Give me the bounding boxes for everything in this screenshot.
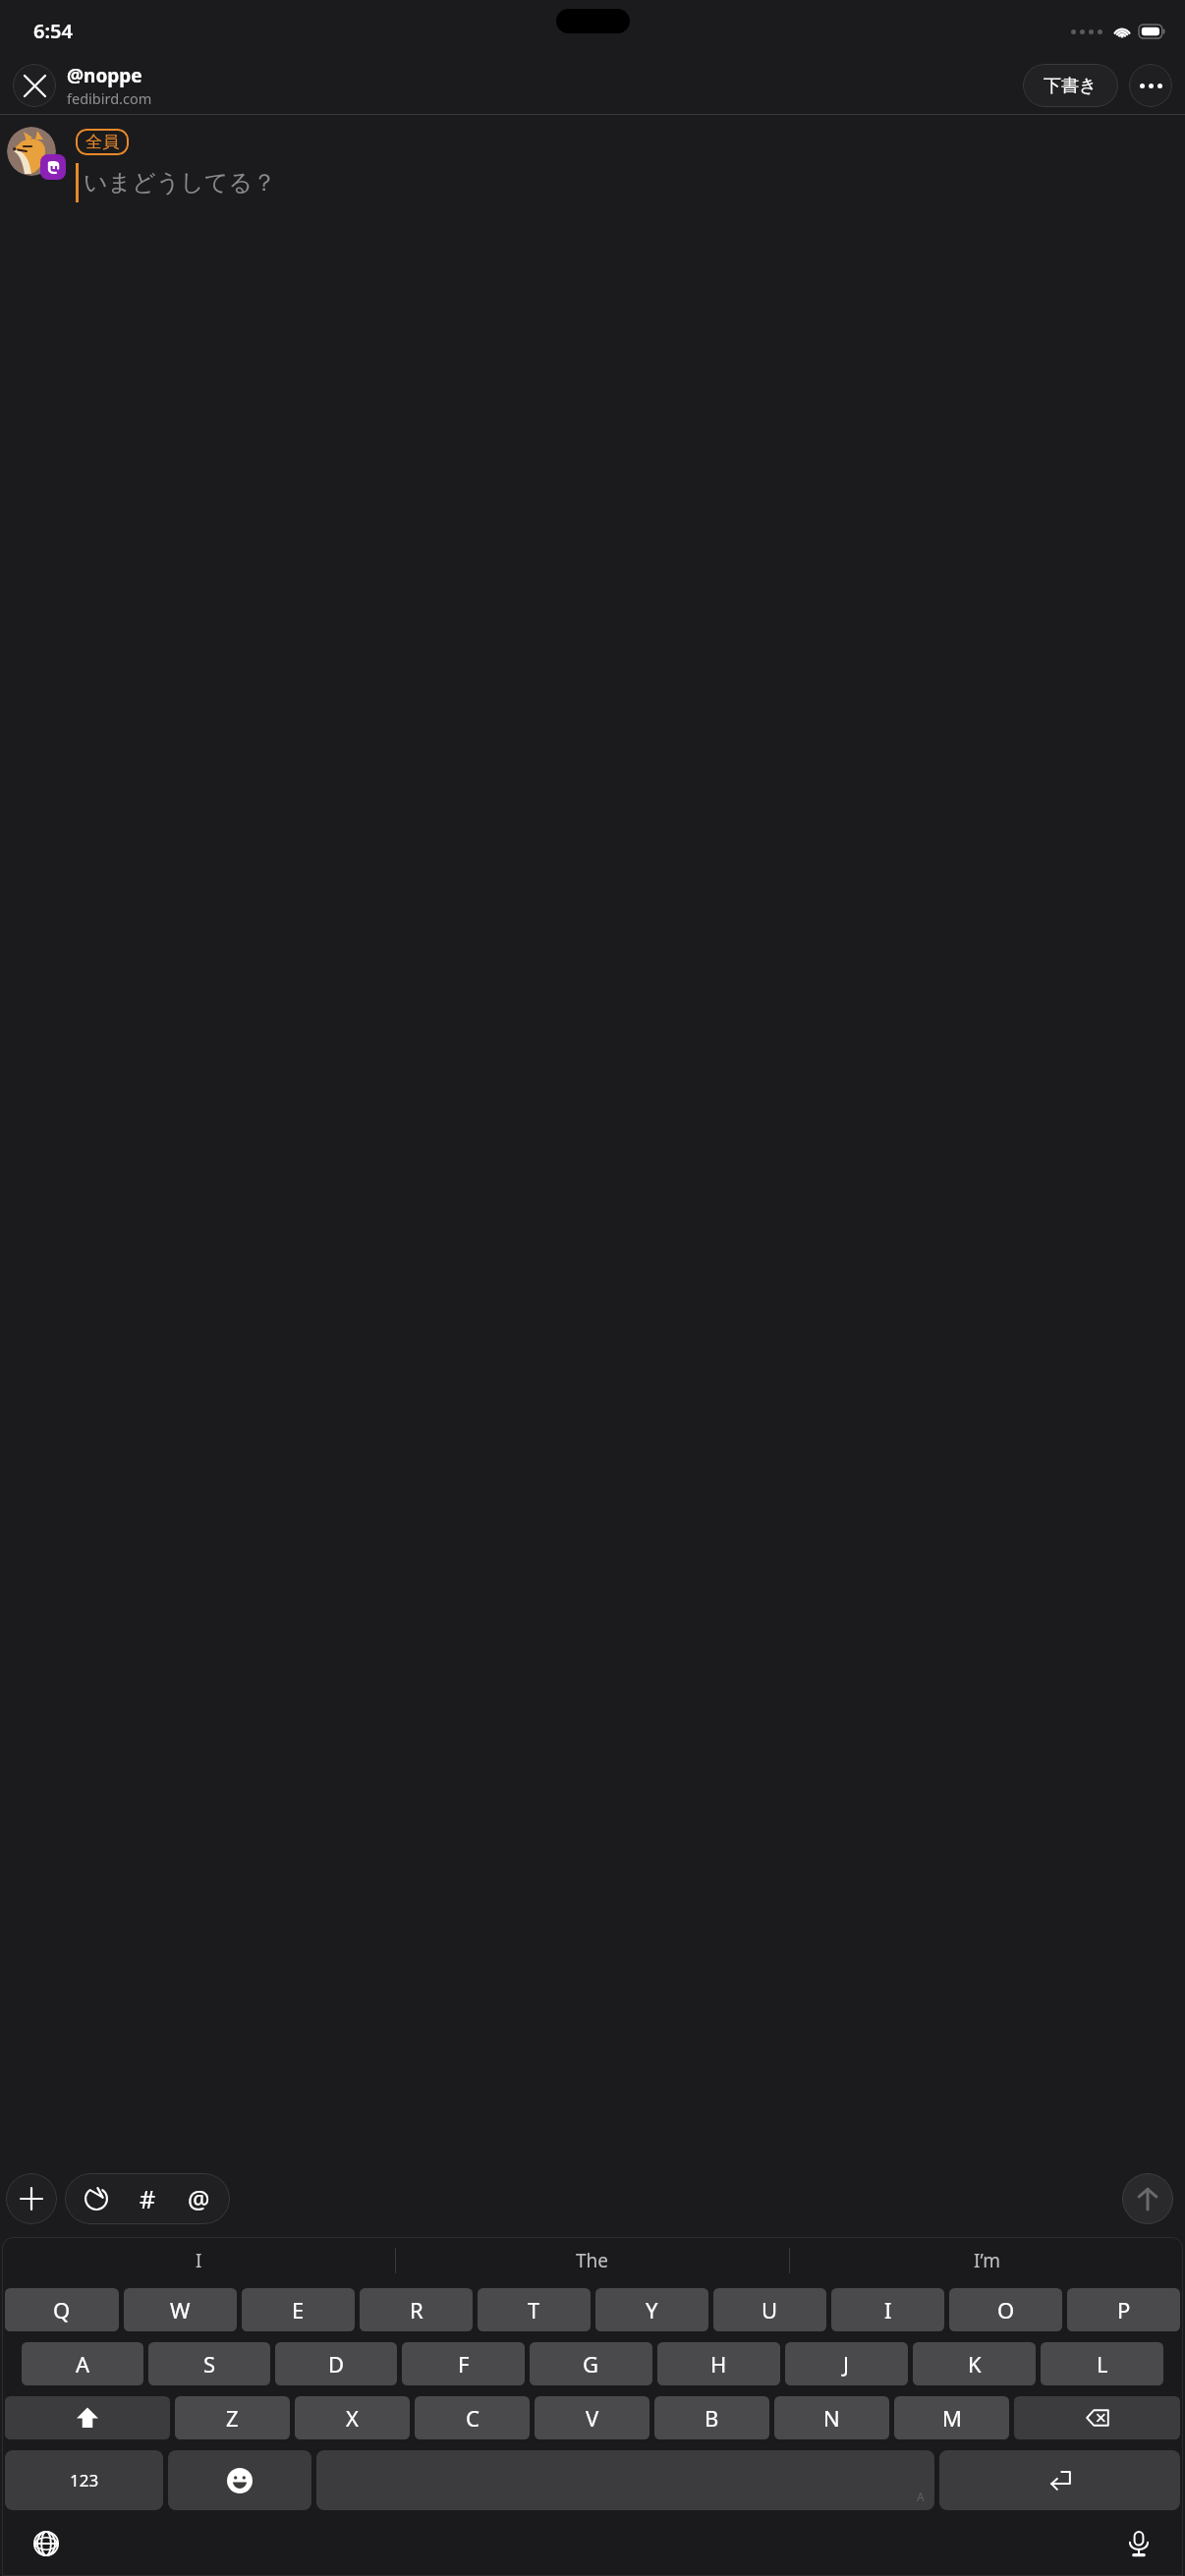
staticText: U bbox=[762, 2295, 778, 2324]
button[interactable]: B bbox=[654, 2396, 769, 2439]
button[interactable]: I bbox=[831, 2288, 944, 2331]
staticText: O bbox=[997, 2295, 1015, 2324]
button[interactable]: 123 bbox=[5, 2450, 163, 2510]
button[interactable]: Y bbox=[595, 2288, 708, 2331]
staticText: C bbox=[466, 2403, 480, 2433]
button[interactable]: G bbox=[530, 2342, 652, 2385]
button[interactable]: I’m bbox=[790, 2237, 1183, 2284]
button[interactable]: X bbox=[295, 2396, 410, 2439]
button[interactable]: The bbox=[396, 2237, 789, 2284]
staticText: fedibird.com bbox=[67, 88, 152, 108]
staticText: J bbox=[843, 2349, 850, 2379]
staticText: 全員 bbox=[85, 132, 119, 152]
staticText: いまどうしてる？ bbox=[84, 168, 276, 197]
button[interactable]: A bbox=[22, 2342, 143, 2385]
button[interactable]: A bbox=[316, 2450, 934, 2510]
button[interactable] bbox=[7, 127, 56, 176]
button[interactable]: Emoji bbox=[168, 2450, 311, 2510]
staticText: K bbox=[968, 2349, 982, 2379]
staticText: I bbox=[884, 2295, 892, 2324]
button[interactable]: V bbox=[535, 2396, 649, 2439]
staticText: Y bbox=[646, 2295, 658, 2324]
button[interactable]: M bbox=[894, 2396, 1009, 2439]
button[interactable]: Mention bbox=[173, 2173, 224, 2224]
staticText: 123 bbox=[70, 2469, 99, 2492]
button[interactable]: Hashtag bbox=[122, 2173, 173, 2224]
button[interactable]: More options bbox=[1129, 64, 1172, 107]
staticText: R bbox=[410, 2295, 423, 2324]
button[interactable]: 全員 bbox=[76, 129, 129, 155]
staticText: S bbox=[203, 2349, 216, 2379]
button[interactable]: T bbox=[478, 2288, 591, 2331]
staticText: P bbox=[1117, 2295, 1131, 2324]
button[interactable]: J bbox=[785, 2342, 908, 2385]
button[interactable]: D bbox=[275, 2342, 397, 2385]
button[interactable]: K bbox=[913, 2342, 1036, 2385]
staticText: # bbox=[140, 2182, 156, 2215]
staticText: The bbox=[576, 2248, 609, 2273]
staticText: M bbox=[942, 2403, 962, 2433]
staticText: Z bbox=[226, 2403, 239, 2433]
button[interactable]: P bbox=[1067, 2288, 1180, 2331]
button[interactable]: 下書き bbox=[1023, 64, 1118, 107]
button[interactable]: N bbox=[774, 2396, 889, 2439]
button[interactable]: Add attachment bbox=[6, 2173, 57, 2224]
button[interactable]: Content warning bbox=[71, 2173, 122, 2224]
button[interactable]: R bbox=[360, 2288, 473, 2331]
staticText: I bbox=[196, 2248, 202, 2273]
staticText: X bbox=[346, 2403, 359, 2433]
button[interactable]: W bbox=[124, 2288, 237, 2331]
staticText: @ bbox=[188, 2182, 210, 2215]
staticText: G bbox=[583, 2349, 599, 2379]
staticText: E bbox=[292, 2295, 305, 2324]
staticText: T bbox=[528, 2295, 540, 2324]
staticText: L bbox=[1097, 2349, 1108, 2379]
staticText: A bbox=[76, 2349, 90, 2379]
button[interactable]: Switch keyboard bbox=[24, 2521, 69, 2566]
staticText: D bbox=[328, 2349, 345, 2379]
staticText: Q bbox=[53, 2295, 71, 2324]
button[interactable]: F bbox=[402, 2342, 525, 2385]
button[interactable]: L bbox=[1041, 2342, 1163, 2385]
button[interactable]: C bbox=[415, 2396, 530, 2439]
staticText: V bbox=[586, 2403, 599, 2433]
button[interactable]: Q bbox=[5, 2288, 119, 2331]
staticText: H bbox=[710, 2349, 727, 2379]
staticText: W bbox=[170, 2295, 191, 2324]
staticText: A bbox=[917, 2489, 925, 2504]
staticText: F bbox=[458, 2349, 470, 2379]
staticText: B bbox=[705, 2403, 719, 2433]
staticText: 下書き bbox=[1044, 75, 1098, 97]
staticText: N bbox=[823, 2403, 840, 2433]
button[interactable]: H bbox=[657, 2342, 780, 2385]
button[interactable]: Return bbox=[939, 2450, 1180, 2510]
button[interactable]: Shift bbox=[5, 2396, 170, 2439]
button[interactable]: Dictation bbox=[1116, 2521, 1161, 2566]
button[interactable]: E bbox=[242, 2288, 355, 2331]
button[interactable]: O bbox=[949, 2288, 1062, 2331]
button[interactable]: I bbox=[2, 2237, 395, 2284]
staticText: I’m bbox=[974, 2248, 1000, 2273]
button[interactable]: U bbox=[713, 2288, 826, 2331]
button[interactable]: S bbox=[148, 2342, 270, 2385]
button[interactable]: Close bbox=[13, 64, 56, 107]
button[interactable]: Z bbox=[175, 2396, 290, 2439]
button[interactable]: Backspace bbox=[1014, 2396, 1180, 2439]
staticText: 6:54 bbox=[33, 18, 73, 44]
staticText: @noppe bbox=[67, 63, 142, 88]
button[interactable]: Post bbox=[1122, 2173, 1173, 2224]
